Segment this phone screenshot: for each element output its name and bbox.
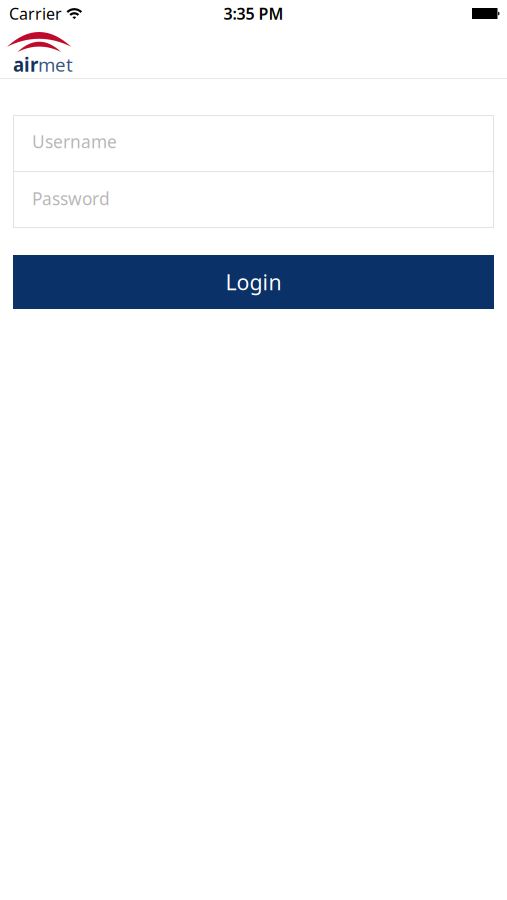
staticText: 3:35 PM [223,3,283,24]
staticText: air [13,52,38,77]
staticText: Password [32,187,110,210]
staticText: Carrier [9,3,62,24]
staticText: Username [32,130,117,153]
button[interactable]: Login [13,255,494,309]
staticText: met [38,52,73,77]
button[interactable]: Username [13,115,494,171]
staticText: Login [225,268,281,296]
button[interactable]: Password [13,172,494,228]
